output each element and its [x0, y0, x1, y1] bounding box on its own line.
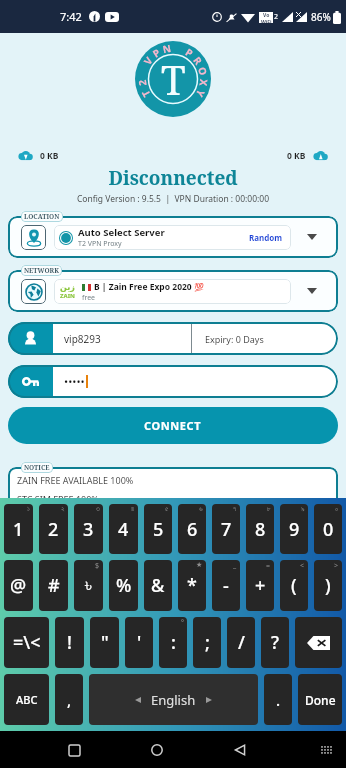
- button[interactable]: 8: [246, 504, 274, 554]
- staticText: ৭: [233, 505, 237, 512]
- staticText: ২: [61, 505, 65, 512]
- button[interactable]: Back: [225, 735, 255, 765]
- staticText: +: [255, 573, 266, 598]
- staticText: ": [101, 630, 109, 655]
- button[interactable]: !: [55, 617, 84, 668]
- staticText: :: [171, 630, 176, 655]
- staticText: -: [223, 573, 229, 598]
- button[interactable]: vip8293: [8, 322, 338, 355]
- staticText: Auto Select Server: [78, 226, 165, 239]
- staticText: 8: [255, 517, 266, 542]
- button[interactable]: ৳: [74, 560, 103, 611]
- button[interactable]: -: [212, 560, 240, 611]
- staticText: Done: [305, 692, 336, 708]
- staticText: ZAIN FREE AVAILABLE 100%: [17, 474, 134, 486]
- button[interactable]: 9: [280, 504, 308, 554]
- button[interactable]: 1: [4, 504, 33, 554]
- button[interactable]: ?: [261, 617, 289, 668]
- staticText: #: [48, 573, 60, 598]
- button[interactable]: .: [264, 674, 292, 725]
- staticText: 9: [289, 517, 300, 542]
- staticText: Disconnected: [0, 165, 346, 191]
- staticText: ১: [27, 505, 30, 512]
- staticText: Random: [249, 232, 283, 243]
- staticText: 0: [323, 517, 334, 542]
- staticText: ;: [205, 630, 210, 655]
- staticText: 2: [48, 517, 59, 542]
- staticText: 0 KB: [40, 150, 59, 162]
- staticText: 7: [221, 517, 232, 542]
- button[interactable]: Done: [298, 674, 342, 725]
- button[interactable]: 4: [109, 504, 138, 554]
- staticText: *: [187, 573, 197, 598]
- button[interactable]: %: [109, 560, 138, 611]
- staticText: English: [151, 691, 196, 709]
- button[interactable]: #: [39, 560, 68, 611]
- button[interactable]: 0: [314, 504, 342, 554]
- staticText: >: [334, 561, 339, 571]
- button[interactable]: 7: [212, 504, 240, 554]
- button[interactable]: :: [159, 617, 187, 668]
- button[interactable]: ': [125, 617, 153, 668]
- staticText: WiFi: [261, 19, 272, 23]
- staticText: ,: [67, 690, 72, 710]
- button[interactable]: Backspace: [295, 617, 342, 668]
- staticText: STC SIM FREE 100%: [17, 493, 99, 505]
- button[interactable]: 5: [144, 504, 172, 554]
- button[interactable]: 2: [39, 504, 68, 554]
- button[interactable]: 6: [178, 504, 206, 554]
- staticText: <: [300, 561, 305, 571]
- staticText: CONNECT: [144, 418, 202, 433]
- staticText: T: [161, 52, 186, 106]
- button[interactable]: Recents: [59, 735, 89, 765]
- button[interactable]: 3: [74, 504, 103, 554]
- staticText: vip8293: [64, 332, 101, 346]
- staticText: °: [181, 618, 184, 628]
- staticText: ৩: [96, 505, 100, 512]
- button[interactable]: /: [227, 617, 255, 668]
- staticText: LOCATION: [24, 212, 60, 221]
- button[interactable]: +: [246, 560, 274, 611]
- button[interactable]: [21, 225, 46, 250]
- button[interactable]: &: [144, 560, 172, 611]
- button[interactable]: CONNECT: [8, 407, 338, 444]
- button[interactable]: (: [280, 560, 308, 611]
- button[interactable]: Home: [142, 735, 172, 765]
- staticText: $: [95, 561, 100, 571]
- button[interactable]: =\<: [4, 617, 49, 668]
- button[interactable]: ABC: [4, 674, 49, 725]
- button[interactable]: ": [90, 617, 119, 668]
- button[interactable]: •••••: [8, 365, 338, 398]
- button[interactable]: ;: [193, 617, 221, 668]
- staticText: 7:42: [60, 9, 82, 24]
- staticText: 💯: [194, 283, 204, 292]
- button[interactable]: ): [314, 560, 342, 611]
- staticText: 4: [118, 517, 129, 542]
- button[interactable]: ,: [55, 674, 83, 725]
- staticText: NETWORK: [24, 266, 59, 275]
- staticText: ABC: [16, 692, 38, 707]
- staticText: ৬: [199, 505, 203, 512]
- staticText: T2 VPN Proxy: [78, 239, 122, 249]
- staticText: (: [291, 573, 297, 598]
- button[interactable]: [21, 279, 46, 304]
- button[interactable]: Switch keyboard: [314, 737, 340, 763]
- button[interactable]: @: [4, 560, 33, 611]
- button[interactable]: Auto Select Server: [59, 225, 286, 250]
- staticText: =\<: [13, 630, 41, 655]
- staticText: 1: [13, 517, 24, 542]
- staticText: ?: [271, 630, 280, 655]
- button[interactable]: English: [89, 674, 258, 725]
- staticText: 2: [274, 12, 279, 22]
- staticText: 5: [153, 517, 164, 542]
- button[interactable]: *: [178, 560, 206, 611]
- staticText: _: [233, 561, 237, 571]
- button[interactable]: Expand network: [291, 276, 333, 306]
- button[interactable]: Expand location: [291, 222, 333, 252]
- staticText: ): [325, 573, 331, 598]
- staticText: ৪: [131, 505, 135, 512]
- staticText: B | Zain Free Expo 2020: [94, 281, 192, 293]
- staticText: 6: [187, 517, 198, 542]
- staticText: &: [151, 573, 165, 598]
- button[interactable]: زين: [60, 279, 285, 304]
